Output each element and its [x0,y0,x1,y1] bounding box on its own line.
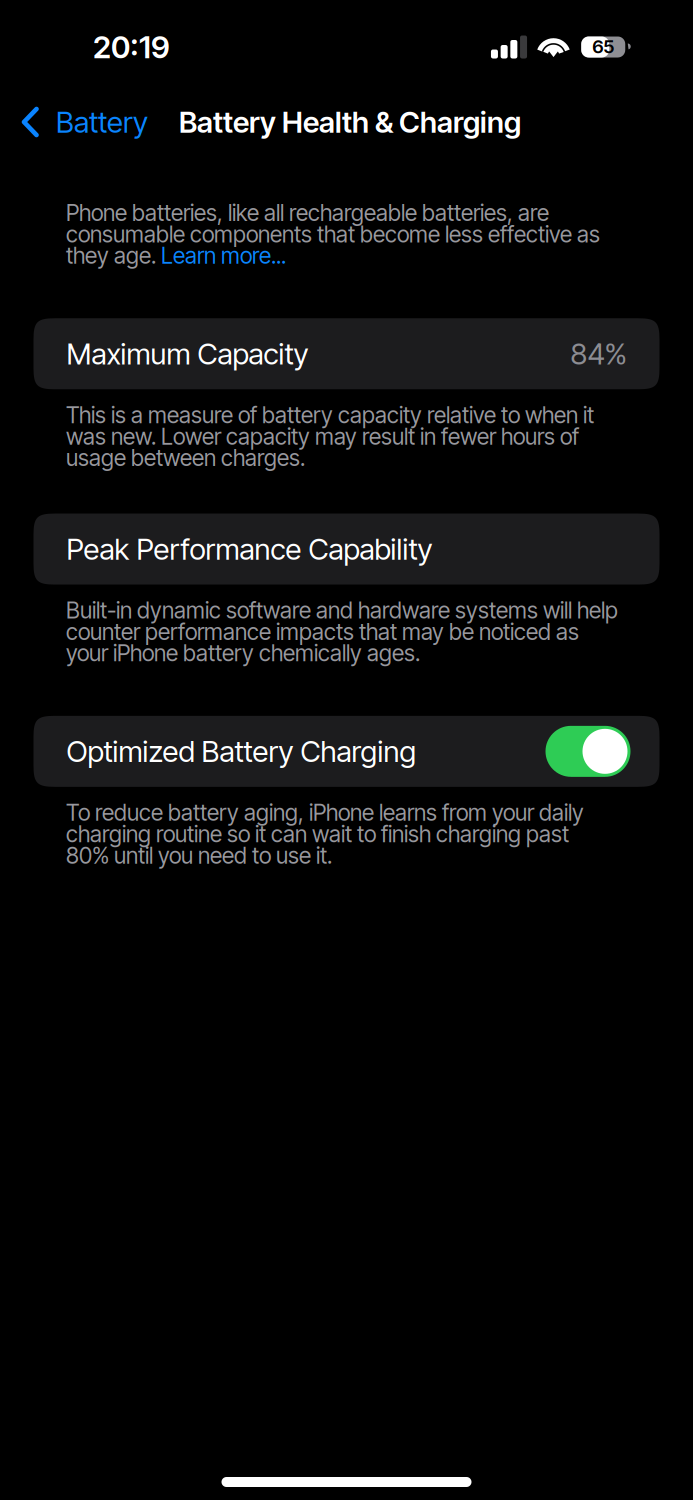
button[interactable]: Learn more... [161,242,286,269]
staticText: Optimized Battery Charging [66,734,416,769]
button[interactable]: Optimized Battery Charging, on [545,726,630,777]
staticText: Battery Health & Charging [179,104,521,140]
staticText: consumable components that become less e… [66,220,600,248]
button[interactable]: Optimized Battery Charging [33,716,659,787]
staticText: Built-in dynamic software and hardware s… [66,597,618,667]
staticText: they age. [66,242,161,269]
staticText: 84% [570,336,626,371]
button[interactable]: Battery [0,96,200,148]
staticText: Maximum Capacity [66,336,308,371]
button[interactable]: Maximum Capacity [33,318,659,389]
staticText: Learn more... [161,242,286,269]
staticText: 20:19 [93,28,170,65]
staticText: Peak Performance Capability [66,531,432,567]
staticText: Phone batteries, like all rechargeable b… [66,199,549,226]
button[interactable]: Peak Performance Capability [33,514,659,585]
staticText: To reduce battery aging, iPhone learns f… [66,799,584,869]
staticText: 65 [592,35,614,58]
staticText: Battery [56,104,148,140]
staticText: This is a measure of battery capacity re… [66,401,594,472]
